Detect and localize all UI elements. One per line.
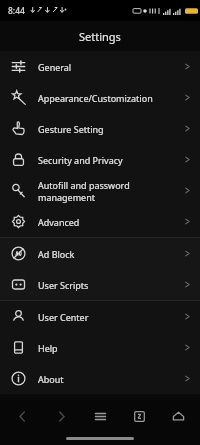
button[interactable]: Advanced: [0, 206, 200, 237]
staticText: User Center: [38, 311, 89, 323]
staticText: General: [38, 61, 72, 73]
button[interactable]: Security and Privacy: [0, 144, 200, 175]
staticText: 8:44: [8, 5, 25, 17]
button[interactable]: General: [0, 51, 200, 82]
button[interactable]: Help: [0, 332, 200, 363]
staticText: User Scripts: [38, 279, 89, 291]
button[interactable]: Tabs: [122, 400, 156, 432]
button[interactable]: Autofill and password management: [0, 175, 200, 206]
button[interactable]: Menu: [83, 400, 117, 432]
staticText: Settings: [79, 29, 121, 44]
staticText: Advanced: [38, 216, 80, 228]
button[interactable]: About: [0, 363, 200, 394]
staticText: Help: [38, 342, 58, 354]
staticText: About: [38, 373, 64, 385]
button[interactable]: Forward: [44, 400, 78, 432]
button[interactable]: Ad Block: [0, 238, 200, 269]
button[interactable]: Appearance/Customization: [0, 82, 200, 113]
button[interactable]: User Center: [0, 301, 200, 332]
staticText: Gesture Setting: [38, 123, 104, 135]
staticText: Appearance/Customization: [38, 92, 153, 104]
staticText: Ad Block: [38, 248, 75, 260]
button[interactable]: Back: [5, 400, 39, 432]
staticText: Autofill and password management: [38, 179, 184, 203]
button[interactable]: User Scripts: [0, 269, 200, 300]
staticText: Security and Privacy: [38, 154, 123, 166]
button[interactable]: Home: [161, 400, 195, 432]
button[interactable]: Gesture Setting: [0, 113, 200, 144]
